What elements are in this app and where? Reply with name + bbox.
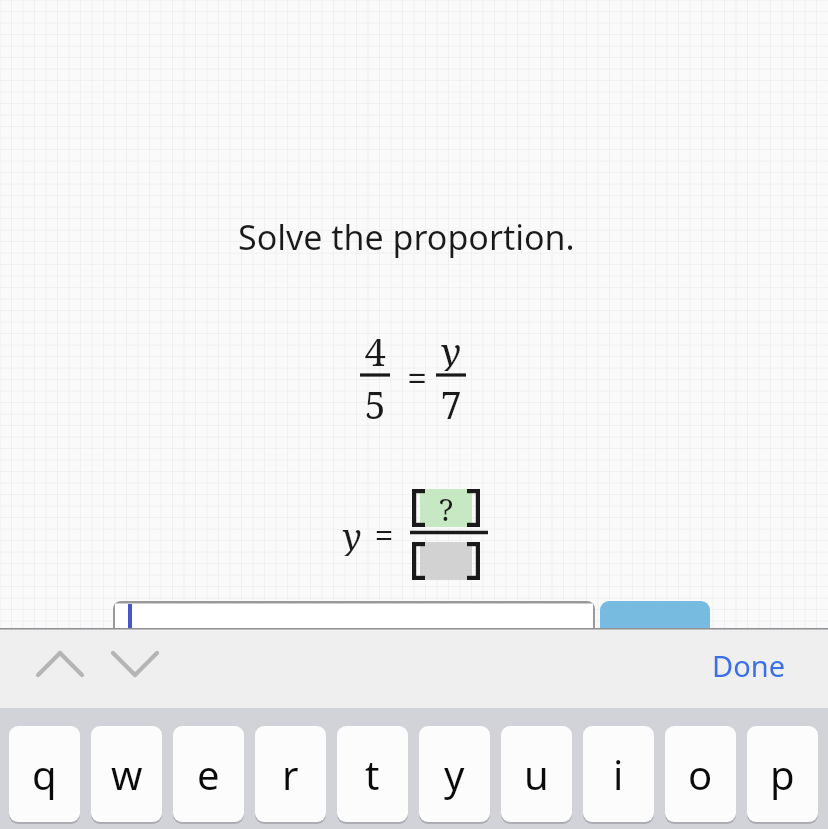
- staticText: q: [32, 747, 57, 801]
- staticText: r: [282, 747, 299, 801]
- button[interactable]: e: [173, 726, 244, 824]
- button[interactable]: t: [337, 726, 408, 824]
- button[interactable]: w: [91, 726, 162, 824]
- button[interactable]: u: [501, 726, 572, 824]
- staticText: 4: [358, 325, 392, 371]
- staticText: y: [444, 747, 465, 801]
- staticText: =: [400, 353, 434, 397]
- staticText: y: [434, 325, 468, 371]
- staticText: ?: [439, 489, 454, 527]
- button[interactable]: [113, 601, 595, 641]
- staticText: t: [365, 747, 380, 801]
- staticText: w: [111, 747, 143, 801]
- staticText: Done: [712, 646, 785, 685]
- staticText: u: [524, 747, 549, 801]
- staticText: y: [338, 512, 366, 556]
- staticText: p: [770, 747, 795, 801]
- staticText: Solve the proportion.: [238, 214, 575, 260]
- staticText: o: [688, 747, 713, 801]
- button[interactable]: Enter: [600, 601, 710, 641]
- button[interactable]: r: [255, 726, 326, 824]
- button[interactable]: Previous field: [34, 638, 86, 690]
- button[interactable]: q: [9, 726, 80, 824]
- button[interactable]: Next field: [109, 638, 161, 690]
- button[interactable]: o: [665, 726, 736, 824]
- button[interactable]: i: [583, 726, 654, 824]
- staticText: 5: [358, 378, 392, 424]
- button[interactable]: Done: [706, 645, 790, 685]
- staticText: 7: [434, 378, 468, 424]
- staticText: =: [368, 512, 400, 556]
- button[interactable]: y: [419, 726, 490, 824]
- button[interactable]: p: [747, 726, 818, 824]
- staticText: i: [613, 747, 624, 801]
- staticText: e: [197, 747, 220, 801]
